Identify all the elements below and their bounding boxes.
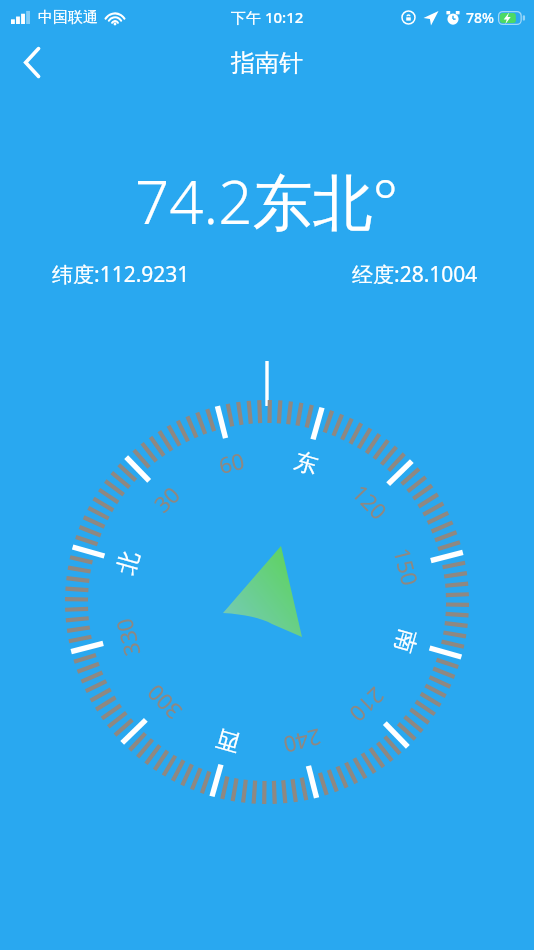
staticText: 78% xyxy=(466,8,494,27)
button[interactable]: Back xyxy=(4,34,60,90)
staticText: 74.2东北° xyxy=(135,160,399,242)
staticText: 经度:28.1004 xyxy=(352,260,478,289)
staticText: 纬度:112.9231 xyxy=(52,260,190,289)
staticText: 指南针 xyxy=(231,48,303,78)
staticText: 中国联通 xyxy=(38,8,98,27)
button[interactable]: Compass dial, heading 74.2 degrees north… xyxy=(0,0,534,950)
staticText: 下午 10:12 xyxy=(231,7,304,27)
